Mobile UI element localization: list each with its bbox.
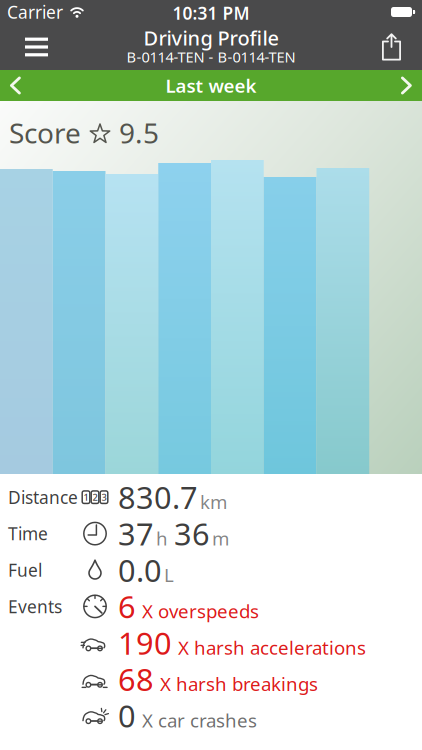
staticText: 9.5	[119, 114, 159, 151]
staticText: Score	[9, 114, 81, 151]
staticText: 3	[101, 491, 106, 503]
staticText: Fuel	[8, 558, 42, 581]
staticText: X harsh accelerations	[178, 635, 366, 660]
staticText: X overspeeds	[142, 599, 259, 623]
staticText: 6	[118, 586, 136, 627]
staticText: Events	[8, 595, 62, 618]
staticText: 36	[174, 513, 210, 554]
staticText: X car crashes	[142, 708, 257, 733]
button[interactable]: Previous week	[0, 77, 29, 94]
staticText: B-0114-TEN - B-0114-TEN	[126, 47, 295, 66]
staticText: 2	[92, 491, 97, 503]
button[interactable]: Share	[372, 33, 422, 60]
staticText: X harsh breakings	[160, 671, 318, 696]
staticText: Carrier	[7, 0, 63, 23]
button[interactable]: Next week	[393, 77, 422, 94]
staticText: 1	[83, 491, 88, 503]
staticText: h	[156, 526, 168, 551]
staticText: Last week	[165, 73, 256, 98]
staticText: Distance	[8, 486, 78, 509]
button[interactable]: Menu	[0, 38, 60, 56]
staticText: 68	[118, 659, 154, 699]
staticText: 10:31 PM	[172, 1, 249, 24]
staticText: Time	[8, 522, 48, 545]
staticText: Driving Profile	[143, 24, 278, 51]
staticText: km	[200, 489, 227, 514]
staticText: m	[212, 526, 229, 551]
staticText: 830.7	[118, 477, 198, 517]
staticText: L	[164, 562, 174, 587]
staticText: 0	[118, 695, 136, 736]
staticText: 190	[118, 622, 172, 663]
staticText: 37	[118, 513, 154, 554]
staticText: 0.0	[118, 550, 162, 590]
